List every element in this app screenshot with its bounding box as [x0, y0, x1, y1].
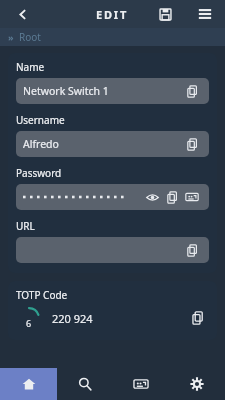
- staticText: 220 924: [52, 311, 93, 326]
- staticText: Root: [19, 30, 41, 44]
- button[interactable]: Menu: [185, 0, 225, 28]
- button[interactable]: Copy: [182, 134, 202, 154]
- button[interactable]: »: [0, 28, 225, 46]
- staticText: Alfredo: [23, 137, 59, 151]
- button[interactable]: Copy: [182, 240, 202, 260]
- button[interactable]: Alfredo: [16, 131, 209, 157]
- button[interactable]: Fill: [182, 187, 202, 207]
- staticText: Username: [16, 113, 65, 127]
- button[interactable]: Copy code: [187, 307, 209, 329]
- button[interactable]: Autofill: [113, 368, 169, 400]
- button[interactable]: Save: [145, 0, 185, 28]
- button[interactable]: Network Switch 1: [16, 78, 209, 104]
- staticText: EDIT: [96, 7, 129, 22]
- staticText: URL: [16, 219, 35, 233]
- button[interactable]: Copy: [16, 237, 209, 263]
- button[interactable]: Search: [57, 368, 113, 400]
- button[interactable]: Show password: [16, 184, 209, 210]
- staticText: TOTP Code: [16, 288, 68, 302]
- staticText: Password: [16, 166, 62, 180]
- button[interactable]: Copy: [182, 81, 202, 101]
- button[interactable]: Back: [0, 0, 44, 28]
- button[interactable]: Settings: [169, 368, 225, 400]
- button[interactable]: Copy: [162, 187, 182, 207]
- staticText: »: [8, 31, 14, 43]
- button[interactable]: Home: [0, 368, 57, 400]
- staticText: Name: [16, 60, 45, 74]
- staticText: 6: [26, 317, 32, 329]
- staticText: Network Switch 1: [23, 84, 109, 98]
- button[interactable]: Show password: [142, 187, 162, 207]
